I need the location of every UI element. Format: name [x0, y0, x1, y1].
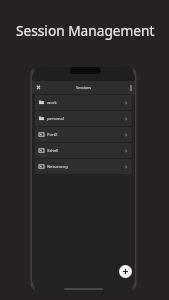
button[interactable]: Close: [32, 81, 45, 94]
button[interactable]: Netuerang: [35, 159, 132, 174]
button[interactable]: personal: [35, 111, 132, 126]
button[interactable]: Xshell: [35, 143, 132, 158]
staticText: Session Management: [16, 21, 155, 40]
staticText: PortX: [47, 132, 58, 138]
staticText: Netuerang: [47, 164, 68, 170]
staticText: Xshell: [47, 148, 59, 154]
button[interactable]: Add session: [119, 265, 132, 278]
staticText: Sessions: [76, 85, 91, 90]
button[interactable]: More options: [126, 81, 135, 94]
button[interactable]: PortX: [35, 127, 132, 142]
button[interactable]: work: [35, 95, 132, 110]
staticText: work: [47, 100, 57, 106]
staticText: personal: [47, 116, 64, 122]
